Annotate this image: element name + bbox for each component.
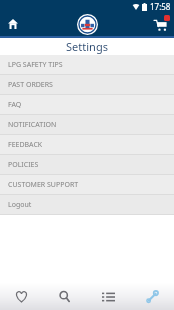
staticText: FAQ [8, 100, 22, 110]
button[interactable]: Search [43, 282, 86, 310]
staticText: Settings [66, 39, 108, 54]
staticText: 17:58 [150, 1, 171, 12]
button[interactable]: FEEDBACK [0, 135, 174, 155]
button[interactable]: PAST ORDERS [0, 75, 174, 95]
staticText: POLICIES [8, 160, 39, 170]
button[interactable]: Cart [150, 14, 170, 34]
button[interactable]: LPG SAFETY TIPS [0, 55, 174, 75]
staticText: PAST ORDERS [8, 80, 53, 90]
button[interactable]: FAQ [0, 95, 174, 115]
button[interactable]: Settings [130, 282, 174, 310]
button[interactable]: NOTIFICATION [0, 115, 174, 135]
button[interactable]: Home [4, 15, 22, 33]
staticText: FEEDBACK [8, 140, 43, 150]
staticText: LPG SAFETY TIPS [8, 60, 63, 70]
button[interactable]: Logout [0, 195, 174, 215]
button[interactable]: Favorites [0, 282, 43, 310]
button[interactable]: Orders [86, 282, 130, 310]
button[interactable]: Logo [77, 14, 98, 35]
button[interactable]: CUSTOMER SUPPORT [0, 175, 174, 195]
staticText: CUSTOMER SUPPORT [8, 180, 79, 190]
staticText: Logout [8, 200, 32, 210]
staticText: NOTIFICATION [8, 120, 57, 130]
button[interactable]: POLICIES [0, 155, 174, 175]
